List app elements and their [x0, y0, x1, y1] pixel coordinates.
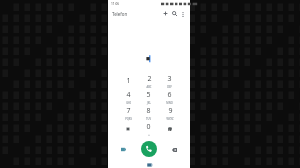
button[interactable]: More options: [179, 10, 187, 18]
staticText: 8: [146, 106, 151, 116]
button[interactable]: 0: [138, 121, 159, 137]
button[interactable]: Search: [170, 9, 179, 18]
button[interactable]: 9: [159, 105, 180, 121]
staticText: JKL: [147, 101, 151, 105]
button[interactable]: Video call: [119, 145, 128, 154]
staticText: WXYZ: [166, 117, 174, 121]
button[interactable]: 8: [138, 105, 159, 121]
staticText: +: [148, 133, 150, 137]
staticText: 11:06: [111, 2, 120, 6]
button[interactable]: Add contact: [161, 9, 170, 18]
staticText: TUV: [146, 117, 151, 121]
button[interactable]: 1: [118, 73, 138, 89]
staticText: 9: [168, 106, 173, 116]
staticText: 1: [126, 76, 131, 86]
button[interactable]: [159, 121, 180, 137]
staticText: MNO: [166, 101, 173, 105]
staticText: 4: [126, 90, 131, 100]
button[interactable]: 6: [159, 89, 180, 105]
staticText: 3: [167, 74, 172, 84]
button[interactable]: Call: [141, 141, 157, 157]
button[interactable]: 2: [138, 73, 159, 89]
staticText: 5: [146, 90, 151, 100]
staticText: 2: [147, 74, 152, 84]
staticText: GHI: [126, 101, 131, 105]
button[interactable]: Backspace: [170, 145, 179, 154]
staticText: Telefon: [112, 11, 128, 17]
staticText: 0: [146, 122, 151, 132]
staticText: ABC: [146, 85, 152, 89]
button[interactable]: [118, 121, 138, 137]
button[interactable]: 4: [118, 89, 138, 105]
button[interactable]: 3: [159, 73, 180, 89]
staticText: 7: [126, 106, 131, 116]
button[interactable]: 5: [138, 89, 159, 105]
staticText: PQRS: [125, 117, 132, 121]
staticText: DEF: [167, 85, 172, 89]
staticText: 6: [167, 90, 172, 100]
button[interactable]: 7: [118, 105, 138, 121]
